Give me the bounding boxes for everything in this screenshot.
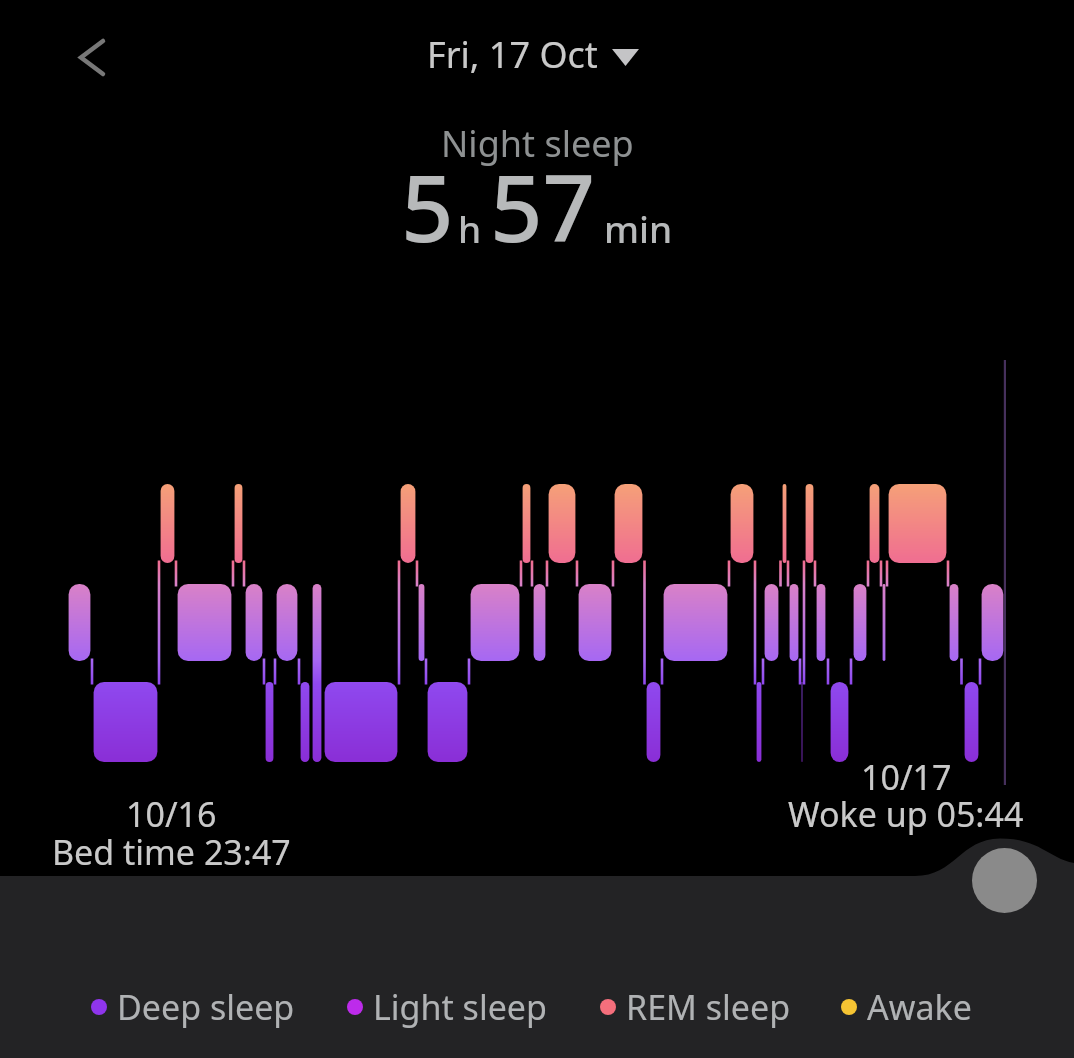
staticText: REM sleep: [626, 984, 791, 1030]
staticText: 10/17: [861, 754, 952, 800]
staticText: Bed time 23:47: [52, 829, 291, 875]
staticText: Deep sleep: [117, 984, 295, 1030]
button[interactable]: [62, 25, 124, 87]
staticText: Woke up 05:44: [788, 791, 1024, 837]
button[interactable]: Light sleep: [347, 984, 547, 1030]
button[interactable]: Deep sleep: [91, 984, 295, 1030]
staticText: Night sleep: [441, 119, 634, 168]
button[interactable]: Awake: [841, 984, 972, 1030]
staticText: 5: [401, 144, 454, 269]
button[interactable]: [970, 846, 1038, 914]
staticText: 10/16: [126, 791, 217, 837]
staticText: Awake: [867, 984, 972, 1030]
staticText: Light sleep: [373, 984, 547, 1030]
button[interactable]: REM sleep: [600, 984, 791, 1030]
staticText: 57: [490, 144, 596, 269]
staticText: Fri, 17 Oct: [427, 30, 598, 79]
staticText: min: [604, 203, 673, 253]
staticText: h: [458, 203, 482, 253]
button[interactable]: [420, 30, 650, 80]
